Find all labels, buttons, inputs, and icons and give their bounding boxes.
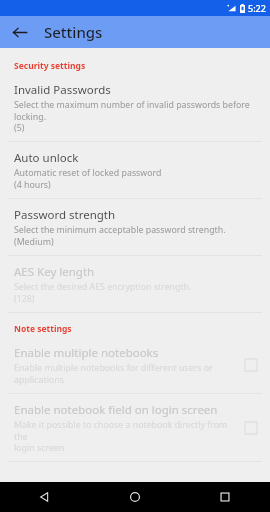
staticText: Note settings <box>14 323 72 335</box>
staticText: Enable notebook field on login screen <box>14 402 218 418</box>
button[interactable]: AES Key length <box>0 256 270 312</box>
button[interactable]: Home <box>90 482 180 512</box>
staticText: Password strength <box>14 207 116 223</box>
staticText: Auto unlock <box>14 150 79 166</box>
button[interactable]: Back <box>0 482 90 512</box>
staticText: Enable multiple notebooks for different … <box>14 362 213 385</box>
staticText: AES Key length <box>14 264 95 280</box>
staticText: Select the desired AES encryption streng… <box>14 281 192 304</box>
staticText: Select the maximum number of invalid pas… <box>14 99 250 133</box>
staticText: Select the minimum acceptable password s… <box>14 224 226 247</box>
button[interactable]: Back <box>5 18 33 46</box>
button[interactable]: Recent apps <box>180 482 270 512</box>
button[interactable]: Enable notebook field on login screen <box>0 394 270 461</box>
staticText: Settings <box>44 22 103 42</box>
button[interactable]: Enable multiple notebooks <box>0 337 270 393</box>
staticText: Security settings <box>14 60 86 72</box>
staticText: 5:22 <box>248 2 266 14</box>
staticText: Enable multiple notebooks <box>14 345 159 361</box>
button[interactable]: Auto unlock <box>0 142 270 198</box>
button[interactable]: Invalid Passwords <box>0 74 270 141</box>
staticText: Invalid Passwords <box>14 82 111 98</box>
staticText: Automatic reset of locked password (4 ho… <box>14 167 162 190</box>
staticText: Make it possible to choose a notebook di… <box>14 419 241 453</box>
button[interactable]: Password strength <box>0 199 270 255</box>
